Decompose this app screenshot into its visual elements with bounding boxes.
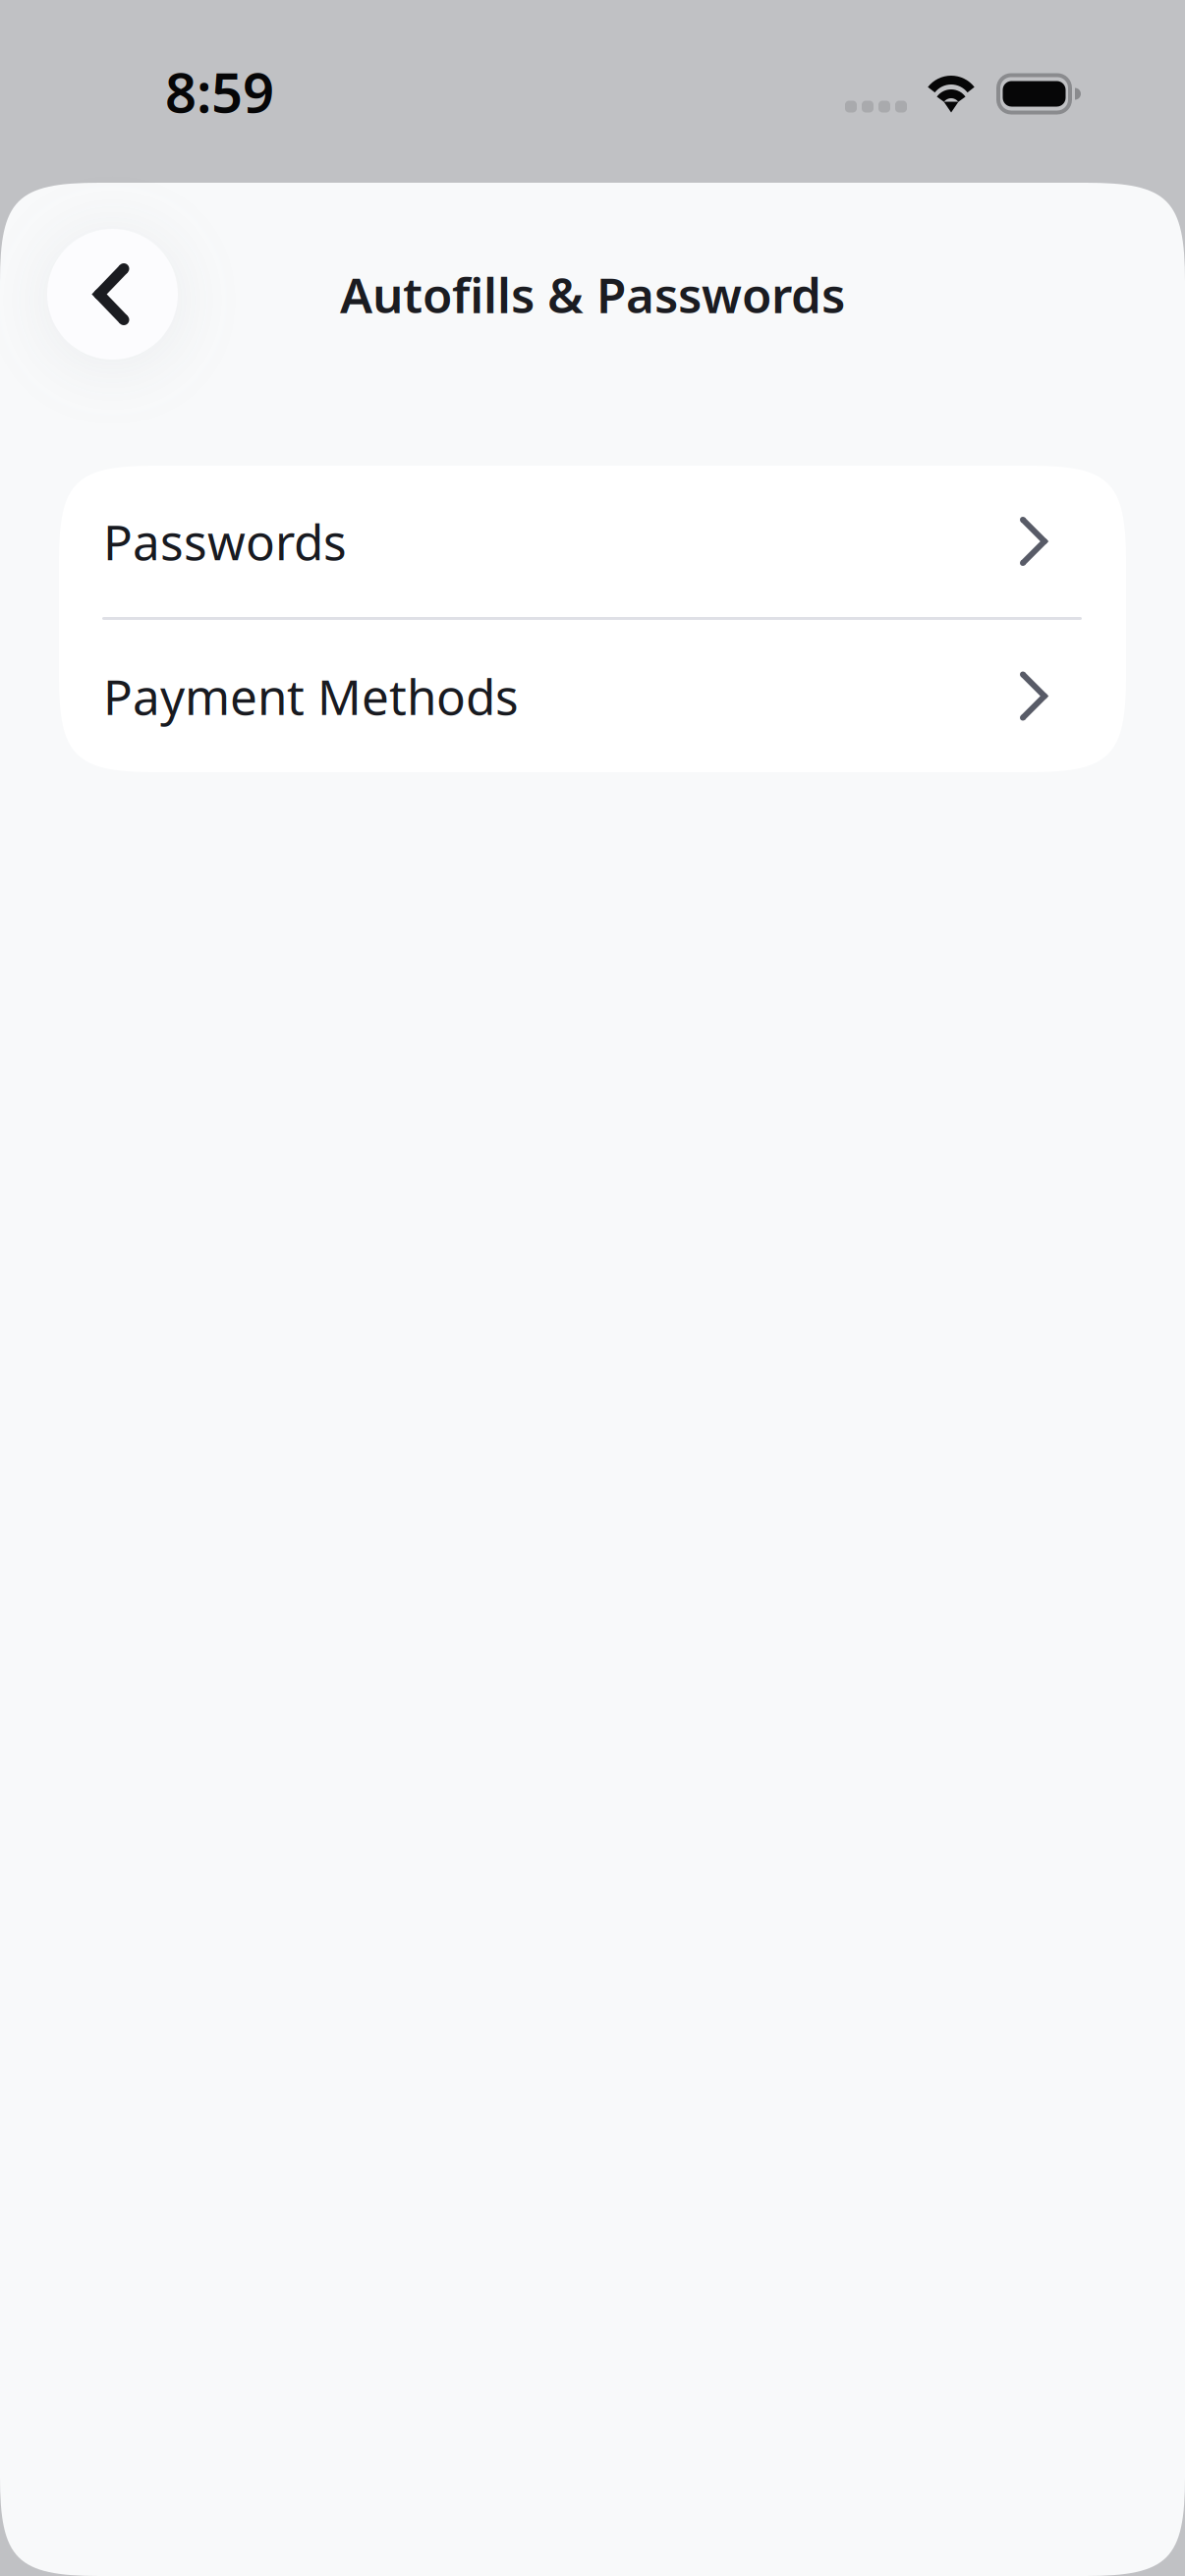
button[interactable]: Passwords bbox=[59, 466, 1126, 617]
staticText: 8:59 bbox=[165, 55, 274, 128]
staticText: Passwords bbox=[103, 509, 347, 573]
button[interactable]: Payment Methods bbox=[59, 620, 1126, 772]
button[interactable]: Back bbox=[47, 229, 178, 360]
staticText: Autofills & Passwords bbox=[340, 262, 845, 326]
staticText: Payment Methods bbox=[103, 664, 519, 728]
